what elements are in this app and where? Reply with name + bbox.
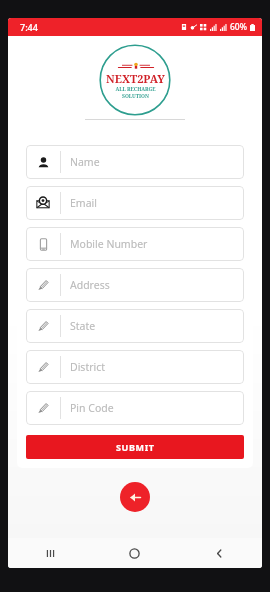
button[interactable]: Email [26, 186, 244, 220]
button[interactable]: SUBMIT [26, 435, 244, 459]
button[interactable]: Back [177, 538, 262, 568]
staticText: ALL RECHARGE [115, 86, 156, 93]
staticText: Name [70, 155, 100, 169]
staticText: SOLUTION [122, 93, 149, 100]
button[interactable]: District [26, 350, 244, 384]
staticText: 60% [230, 21, 247, 33]
staticText: NEXT2PAY [106, 71, 165, 86]
button[interactable]: Back [120, 482, 150, 512]
staticText: Mobile Number [70, 237, 148, 251]
staticText: District [70, 360, 106, 374]
staticText: SUBMIT [116, 441, 155, 453]
button[interactable]: Pin Code [26, 391, 244, 425]
staticText: Email [70, 196, 97, 210]
staticText: 7:44 [20, 21, 38, 33]
button[interactable]: Name [26, 145, 244, 179]
button[interactable]: Address [26, 268, 244, 302]
staticText: State [70, 319, 96, 333]
staticText: Address [70, 278, 110, 292]
button[interactable]: Recent apps [8, 538, 92, 568]
button[interactable]: State [26, 309, 244, 343]
button[interactable]: Mobile Number [26, 227, 244, 261]
button[interactable]: Home [92, 538, 177, 568]
staticText: Pin Code [70, 401, 114, 415]
